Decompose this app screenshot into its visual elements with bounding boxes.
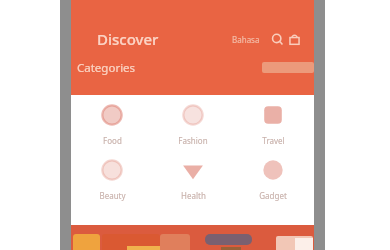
button[interactable]: Search (271, 33, 284, 46)
button[interactable]: Beauty (73, 159, 151, 201)
staticText: Food (103, 135, 122, 146)
staticText: Categories (77, 60, 136, 76)
button[interactable]: Health (154, 159, 232, 201)
button[interactable] (205, 234, 252, 245)
button[interactable]: Fashion (154, 104, 232, 146)
staticText: Bahasa (232, 34, 260, 45)
button[interactable]: Gadget (234, 159, 312, 201)
staticText: Discover (97, 29, 159, 49)
staticText: Beauty (99, 190, 126, 201)
button[interactable] (73, 234, 100, 250)
staticText: Fashion (178, 135, 208, 146)
staticText: Gadget (259, 190, 287, 201)
button[interactable]: Travel (234, 104, 312, 146)
button[interactable] (262, 62, 314, 73)
button[interactable]: Food (73, 104, 151, 146)
button[interactable] (276, 236, 313, 250)
staticText: Travel (262, 135, 285, 146)
staticText: Health (181, 190, 206, 201)
button[interactable] (102, 234, 160, 250)
button[interactable]: Cart (288, 33, 301, 46)
